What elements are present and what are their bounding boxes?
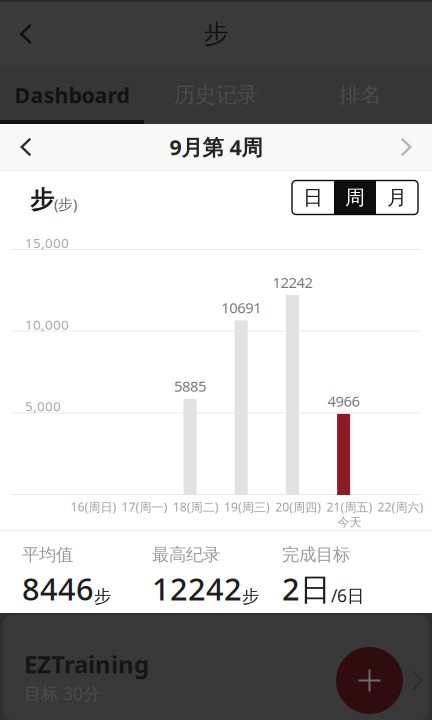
button[interactable]: Open EZTraining xyxy=(403,660,432,700)
staticText: 排名 xyxy=(339,82,381,108)
button[interactable]: Add training xyxy=(336,647,403,714)
button[interactable]: 月 xyxy=(376,180,418,214)
staticText: 历史记录 xyxy=(174,82,258,108)
staticText: 18(周二) xyxy=(173,499,219,515)
staticText: 16(周日) xyxy=(70,499,116,515)
button[interactable]: 日 xyxy=(292,180,334,214)
staticText: 15,000 xyxy=(25,234,69,252)
staticText: 周 xyxy=(345,185,365,210)
staticText: 日 xyxy=(303,185,323,210)
button[interactable]: Previous week xyxy=(0,124,52,170)
button[interactable]: Back xyxy=(0,8,52,60)
button[interactable]: Dashboard xyxy=(0,66,144,124)
staticText: 22(周六) xyxy=(378,499,424,515)
staticText: 19(周三) xyxy=(224,499,270,515)
staticText: 5,000 xyxy=(25,397,61,415)
staticText: 20(周四) xyxy=(275,499,321,515)
staticText: 步 xyxy=(94,586,111,607)
staticText: 10691 xyxy=(221,298,261,317)
staticText: 17(周一) xyxy=(122,499,168,515)
staticText: 4966 xyxy=(328,391,360,411)
staticText: 2日 xyxy=(282,568,331,609)
staticText: 步 xyxy=(30,185,54,214)
staticText: 今天 xyxy=(337,515,361,530)
staticText: 最高纪录 xyxy=(152,544,220,565)
staticText: 月 xyxy=(387,185,407,210)
staticText: /6日 xyxy=(331,584,364,607)
staticText: 12242 xyxy=(152,568,242,609)
button[interactable]: 周 xyxy=(334,180,376,214)
staticText: 12242 xyxy=(272,273,312,292)
staticText: 8446 xyxy=(22,568,94,609)
button[interactable]: 历史记录 xyxy=(144,66,288,124)
staticText: 平均值 xyxy=(22,544,73,565)
staticText: 步 xyxy=(242,586,259,607)
staticText: 9月第 4周 xyxy=(169,133,262,161)
staticText: (步) xyxy=(54,194,77,213)
staticText: 目标 30分 xyxy=(24,682,100,705)
button[interactable]: Next week xyxy=(380,124,432,170)
staticText: 完成目标 xyxy=(282,544,350,565)
staticText: 21(周五) xyxy=(326,499,372,515)
staticText: Dashboard xyxy=(14,81,129,109)
staticText: 5885 xyxy=(174,376,206,396)
staticText: 步 xyxy=(203,18,228,49)
staticText: 10,000 xyxy=(25,316,69,333)
staticText: EZTraining xyxy=(24,648,149,680)
